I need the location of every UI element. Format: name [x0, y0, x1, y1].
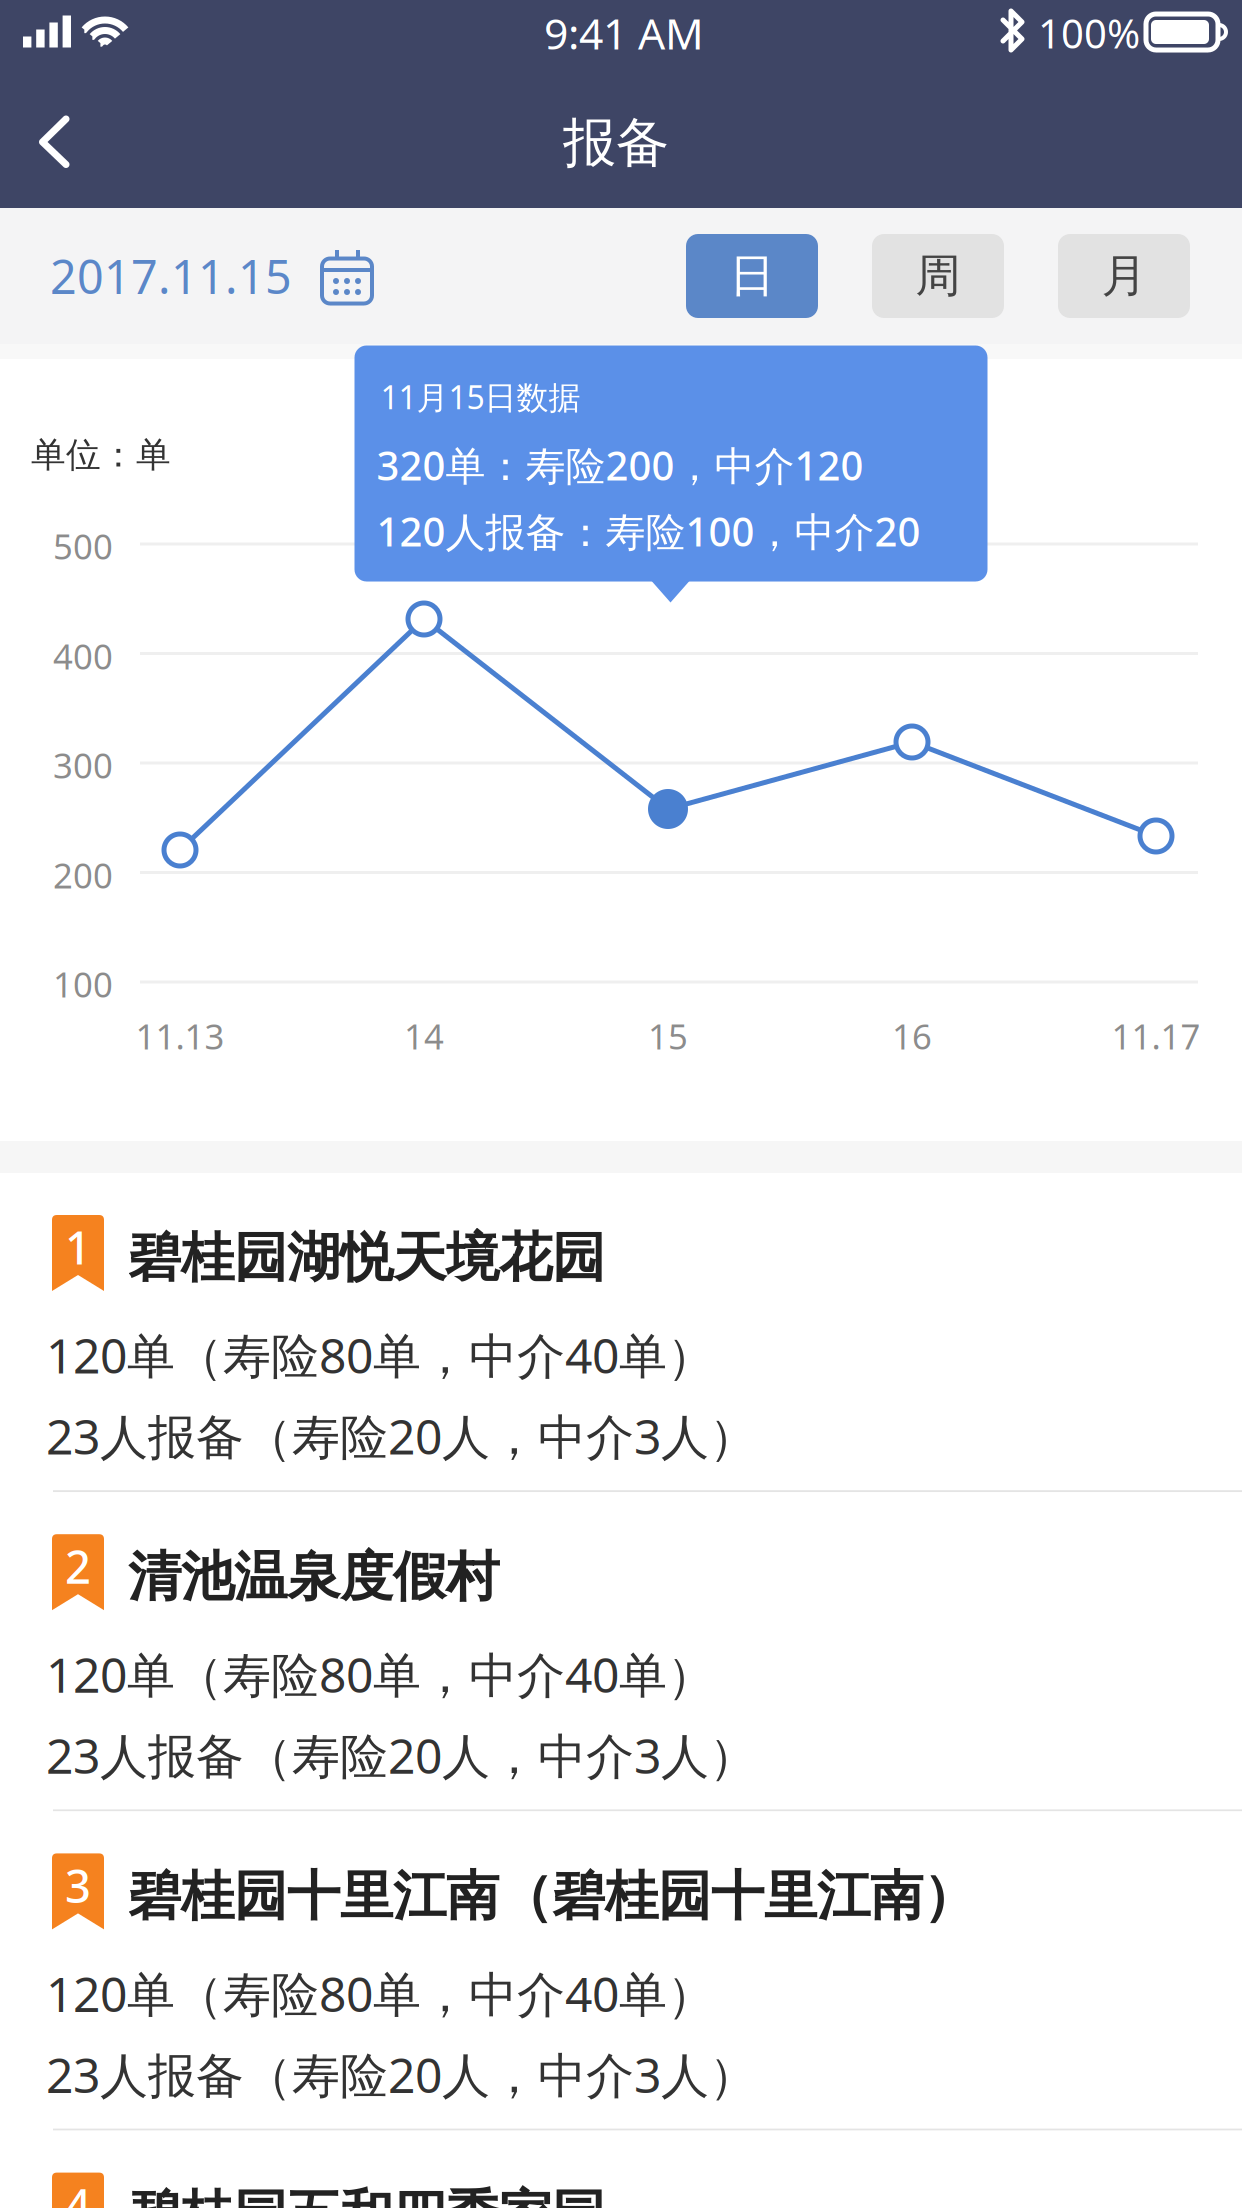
- staticText: 400: [53, 633, 113, 679]
- staticText: 200: [53, 852, 113, 898]
- staticText: 2: [65, 1536, 91, 1596]
- staticText: 500: [53, 523, 113, 569]
- staticText: 23人报备（寿险20人，中介3人）: [46, 1723, 757, 1787]
- button[interactable]: 周: [872, 234, 1004, 318]
- staticText: 周: [915, 248, 960, 304]
- staticText: 3: [65, 1855, 91, 1915]
- button[interactable]: 3: [0, 1811, 1242, 2131]
- button[interactable]: 1: [0, 1173, 1242, 1492]
- staticText: 月: [1101, 248, 1146, 304]
- button[interactable]: 4: [0, 2131, 1242, 2208]
- button[interactable]: 2017.11.15: [0, 208, 396, 344]
- staticText: 报备: [563, 110, 669, 176]
- staticText: 11.17: [1111, 1013, 1200, 1059]
- staticText: 23人报备（寿险20人，中介3人）: [46, 2042, 757, 2106]
- button[interactable]: Back: [0, 95, 124, 199]
- staticText: 2017.11.15: [50, 245, 292, 307]
- staticText: 清池温泉度假村: [128, 1544, 499, 1610]
- staticText: 11月15日数据: [380, 375, 580, 418]
- staticText: 16: [892, 1013, 932, 1059]
- button[interactable]: 2: [0, 1492, 1242, 1811]
- staticText: 日: [729, 248, 774, 304]
- staticText: 14: [404, 1013, 444, 1059]
- staticText: 4: [65, 2174, 91, 2208]
- staticText: 23人报备（寿险20人，中介3人）: [46, 1404, 757, 1468]
- staticText: 120人报备：寿险100，中介20: [376, 504, 920, 558]
- button[interactable]: 月: [1058, 234, 1190, 318]
- staticText: 碧桂园湖悦天境花园: [128, 1225, 605, 1290]
- staticText: 300: [53, 742, 113, 788]
- staticText: 11.13: [135, 1013, 224, 1059]
- staticText: 单位：单: [31, 434, 171, 476]
- staticText: 120单（寿险80单，中介40单）: [46, 1642, 715, 1706]
- staticText: 100%: [1038, 6, 1140, 59]
- staticText: 1: [65, 1217, 91, 1277]
- staticText: 100: [53, 961, 113, 1007]
- staticText: 320单：寿险200，中介120: [376, 438, 863, 492]
- staticText: 9:41 AM: [544, 5, 704, 61]
- staticText: 120单（寿险80单，中介40单）: [46, 1961, 715, 2025]
- staticText: 碧桂园十里江南（碧桂园十里江南）: [128, 1863, 976, 1929]
- staticText: 120单（寿险80单，中介40单）: [46, 1323, 715, 1387]
- button[interactable]: 日: [686, 234, 818, 318]
- staticText: 碧桂园五和四季家园: [128, 2183, 605, 2208]
- staticText: 15: [648, 1013, 688, 1059]
